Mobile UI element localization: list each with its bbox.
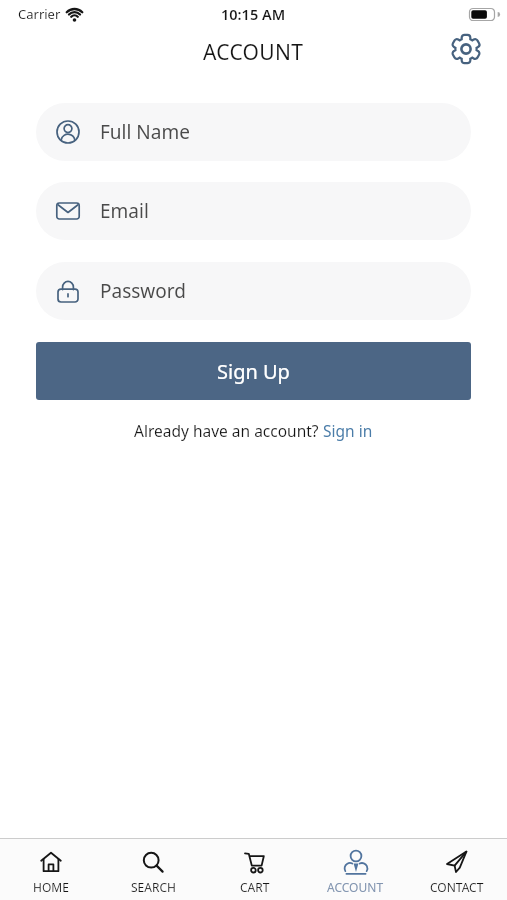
button[interactable]: Password — [36, 262, 471, 320]
staticText: Full Name — [100, 119, 190, 145]
button[interactable]: CART — [204, 839, 305, 900]
staticText: Already have an account? — [134, 420, 323, 441]
staticText: HOME — [33, 879, 69, 895]
button[interactable]: Email — [36, 182, 471, 240]
staticText: Sign Up — [217, 358, 290, 385]
staticText: Email — [100, 198, 149, 224]
staticText: ACCOUNT — [327, 879, 384, 895]
button[interactable]: CONTACT — [406, 839, 507, 900]
button[interactable]: HOME — [0, 839, 102, 900]
staticText: 10:15 AM — [221, 4, 286, 24]
button[interactable]: Sign Up — [36, 342, 471, 400]
button[interactable]: ACCOUNT — [305, 839, 406, 900]
staticText: CONTACT — [430, 879, 484, 895]
button[interactable]: Full Name — [36, 103, 471, 161]
button[interactable]: Sign in — [323, 420, 373, 441]
staticText: SEARCH — [131, 879, 176, 895]
staticText: CART — [240, 879, 270, 895]
button[interactable]: SEARCH — [102, 839, 204, 900]
staticText: Carrier — [18, 5, 61, 23]
staticText: Password — [100, 278, 186, 304]
button[interactable] — [451, 34, 481, 64]
staticText: ACCOUNT — [203, 38, 304, 67]
